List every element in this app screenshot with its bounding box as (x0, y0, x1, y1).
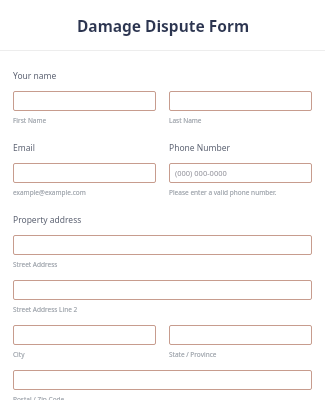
staticText: example@example.com (13, 188, 86, 197)
button[interactable]: Postal / Zip Code (13, 370, 312, 390)
staticText: State / Province (169, 350, 217, 359)
button[interactable]: State / Province (169, 325, 312, 345)
button[interactable]: Last Name (169, 91, 312, 111)
button[interactable]: First Name (13, 91, 156, 111)
staticText: Please enter a valid phone number. (169, 188, 277, 197)
staticText: City (13, 350, 25, 359)
staticText: Phone Number (169, 142, 230, 154)
staticText: First Name (13, 116, 47, 125)
staticText: Street Address Line 2 (13, 305, 78, 314)
staticText: Property address (13, 214, 82, 226)
button[interactable]: Email (13, 163, 156, 183)
staticText: Last Name (169, 116, 202, 125)
staticText: Street Address (13, 260, 58, 269)
staticText: Damage Dispute Form (77, 15, 249, 36)
staticText: (000) 000-0000 (175, 168, 227, 178)
staticText: Postal / Zip Code (13, 395, 65, 400)
staticText: Email (13, 142, 35, 154)
button[interactable]: Street Address Line 2 (13, 280, 312, 300)
button[interactable]: Street Address (13, 235, 312, 255)
staticText: Your name (13, 70, 57, 82)
button[interactable]: Phone Number (169, 163, 312, 183)
button[interactable]: City (13, 325, 156, 345)
